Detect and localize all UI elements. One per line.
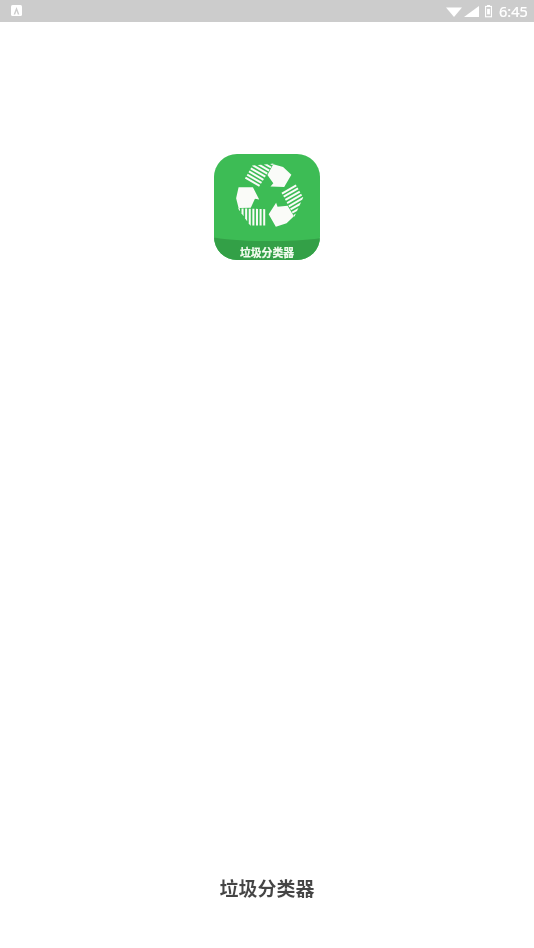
staticText: 6:45	[499, 1, 528, 21]
staticText: 垃圾分类器	[240, 244, 294, 260]
staticText: 垃圾分类器	[219, 874, 315, 902]
button[interactable]: 垃圾分类器 app icon	[214, 154, 320, 260]
